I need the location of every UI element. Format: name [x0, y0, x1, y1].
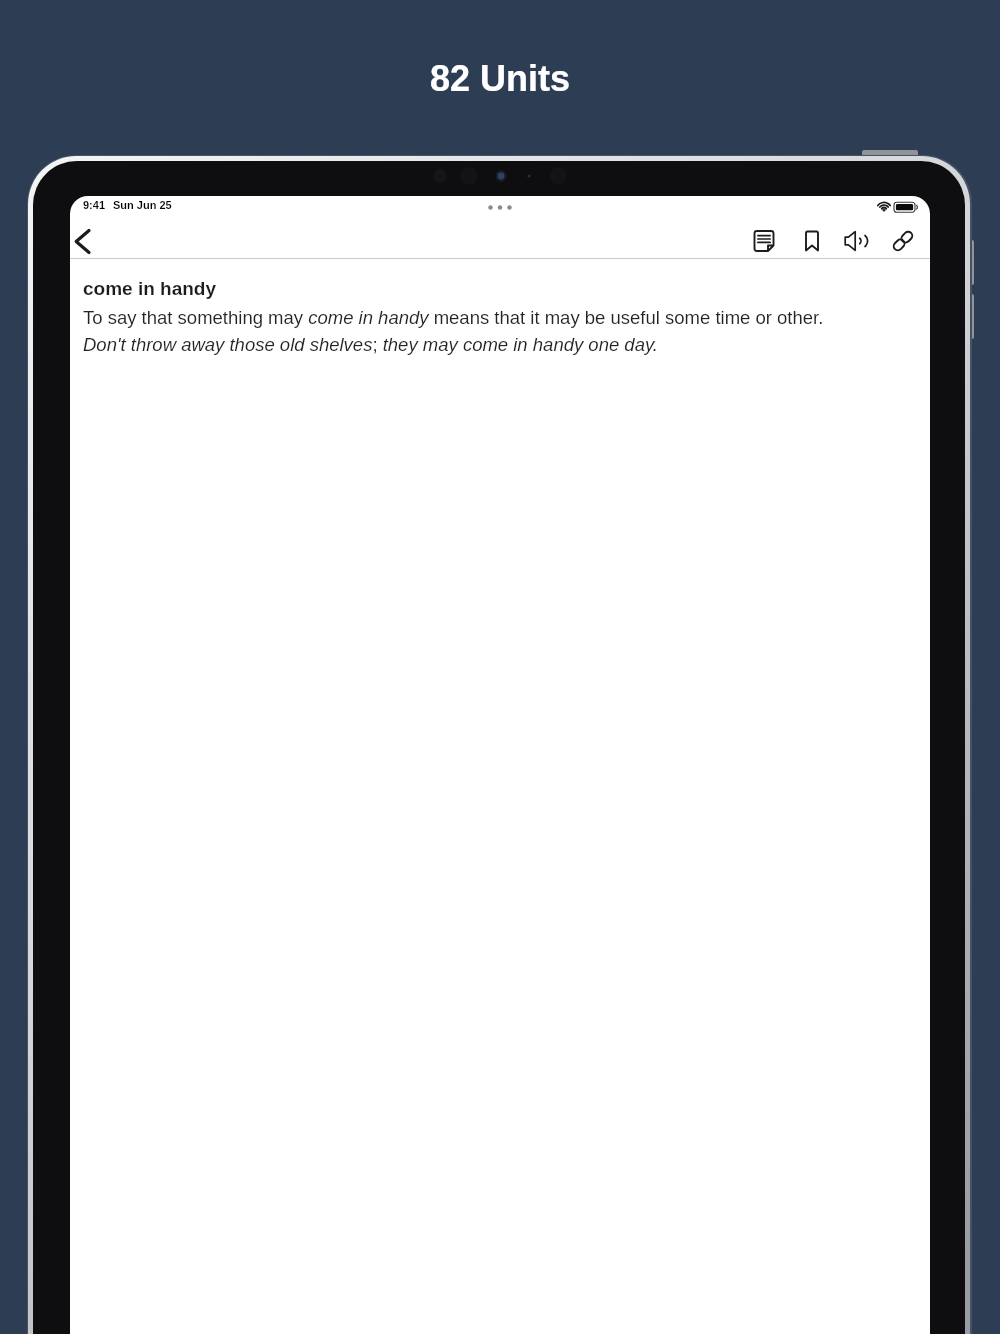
- button[interactable]: [842, 227, 870, 255]
- button[interactable]: [798, 227, 826, 255]
- staticText: come in handy: [83, 278, 217, 299]
- staticText: 82 Units: [430, 58, 571, 98]
- staticText: To say that something may come in handy …: [83, 307, 824, 355]
- staticText: Sun Jun 25: [113, 199, 172, 211]
- button[interactable]: [70, 224, 96, 258]
- staticText: 9:41: [83, 199, 106, 211]
- button[interactable]: [889, 227, 917, 255]
- button[interactable]: [750, 227, 778, 255]
